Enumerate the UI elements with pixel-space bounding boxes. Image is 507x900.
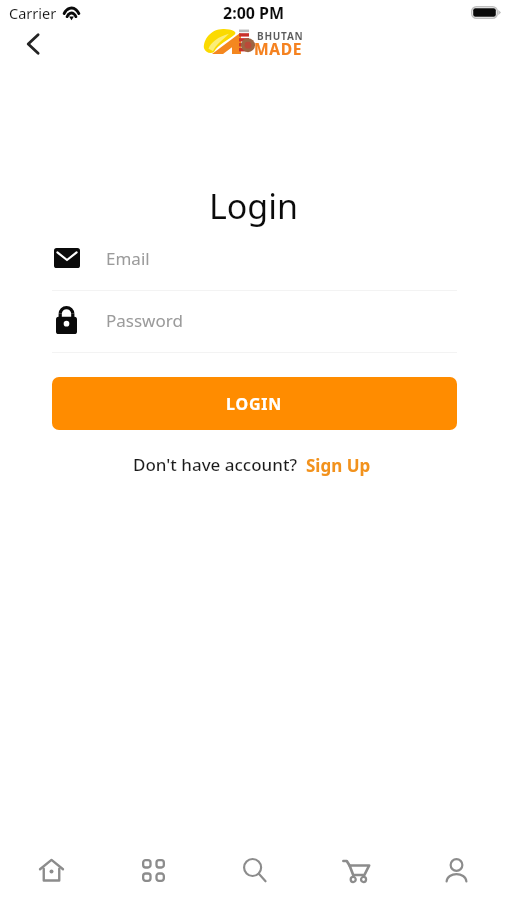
- button[interactable]: Email: [52, 240, 457, 290]
- staticText: LOGIN: [226, 393, 283, 415]
- staticText: Carrier: [9, 3, 57, 23]
- button[interactable]: Back: [14, 25, 52, 63]
- staticText: Login: [0, 183, 507, 229]
- button[interactable]: Sign Up: [306, 454, 371, 477]
- staticText: Don't have account?: [133, 453, 298, 476]
- button[interactable]: Profile: [406, 839, 507, 900]
- staticText: MADE: [254, 38, 303, 59]
- staticText: Password: [106, 309, 183, 332]
- button[interactable]: Categories: [102, 839, 204, 900]
- staticText: BHUTAN: [257, 29, 304, 43]
- button[interactable]: Cart: [305, 839, 406, 900]
- staticText: Sign Up: [306, 454, 371, 477]
- button[interactable]: Home: [0, 839, 102, 900]
- button[interactable]: LOGIN: [52, 377, 457, 430]
- staticText: Email: [106, 247, 150, 270]
- button[interactable]: Password: [52, 302, 457, 352]
- button[interactable]: Search: [204, 839, 305, 900]
- staticText: 2:00 PM: [223, 2, 285, 24]
